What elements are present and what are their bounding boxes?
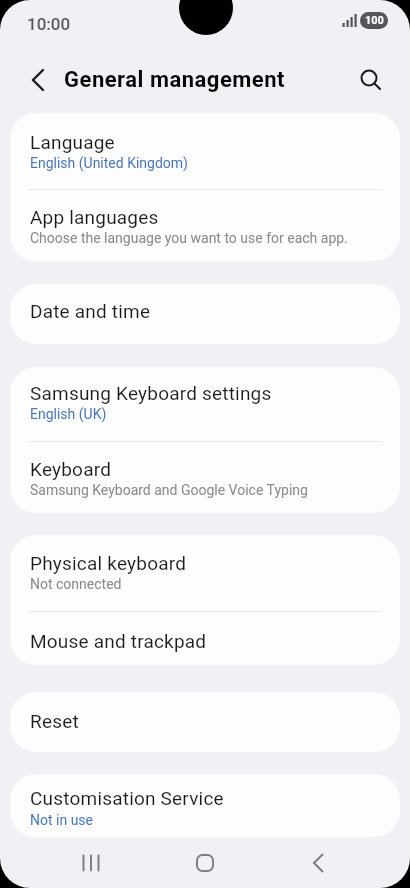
button[interactable] bbox=[22, 62, 58, 98]
button[interactable]: Samsung Keyboard settings bbox=[10, 367, 400, 441]
staticText: English (UK) bbox=[30, 406, 107, 422]
button[interactable] bbox=[353, 62, 389, 98]
staticText: Not connected bbox=[30, 576, 122, 592]
staticText: Choose the language you want to use for … bbox=[30, 230, 348, 246]
button[interactable]: Customisation Service bbox=[10, 774, 400, 837]
staticText: Not in use bbox=[30, 812, 93, 828]
staticText: English (United Kingdom) bbox=[30, 155, 188, 171]
staticText: Keyboard bbox=[30, 458, 112, 480]
button[interactable]: Physical keyboard bbox=[10, 535, 400, 611]
staticText: Samsung Keyboard and Google Voice Typing bbox=[30, 482, 308, 498]
staticText: General management bbox=[64, 67, 286, 93]
staticText: 100 bbox=[365, 14, 384, 27]
button[interactable]: Language bbox=[10, 113, 400, 189]
button[interactable] bbox=[291, 837, 347, 888]
staticText: 10:00 bbox=[27, 14, 71, 34]
button[interactable]: Keyboard bbox=[10, 442, 400, 513]
button[interactable]: Mouse and trackpad bbox=[10, 612, 400, 665]
staticText: App languages bbox=[30, 206, 159, 228]
staticText: Date and time bbox=[30, 300, 151, 322]
button[interactable] bbox=[63, 837, 119, 888]
staticText: Reset bbox=[30, 710, 79, 732]
button[interactable]: Date and time bbox=[10, 284, 400, 344]
staticText: Physical keyboard bbox=[30, 552, 187, 574]
button[interactable]: Reset bbox=[10, 692, 400, 752]
staticText: Customisation Service bbox=[30, 787, 224, 809]
staticText: Language bbox=[30, 131, 115, 153]
button[interactable]: App languages bbox=[10, 190, 400, 261]
button[interactable] bbox=[177, 837, 233, 888]
staticText: Mouse and trackpad bbox=[30, 630, 207, 652]
staticText: Samsung Keyboard settings bbox=[30, 382, 272, 404]
